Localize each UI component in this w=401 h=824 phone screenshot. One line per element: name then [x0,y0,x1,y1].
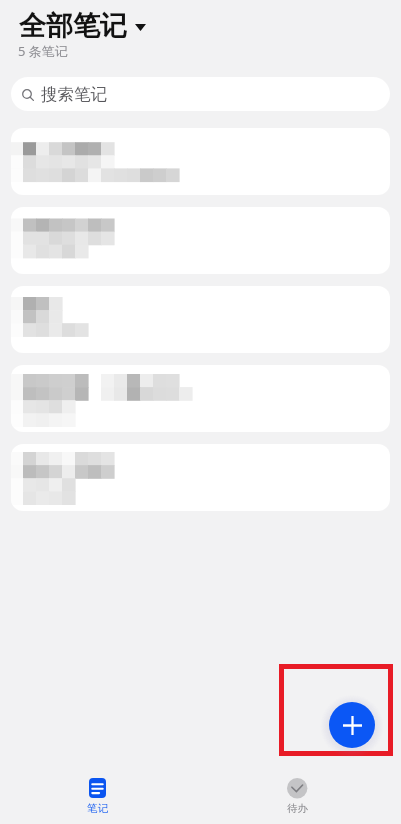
staticText: 全部笔记 [19,9,127,43]
button[interactable] [11,365,390,432]
button[interactable] [11,128,390,195]
button[interactable] [11,286,390,353]
button[interactable]: 笔记 [57,774,137,824]
button[interactable] [11,444,390,511]
staticText: 待办 [287,802,308,815]
staticText: 搜索笔记 [41,84,107,105]
staticText: 5 条笔记 [18,42,68,60]
button[interactable] [11,207,390,274]
button[interactable]: 待办 [257,774,337,824]
button[interactable]: 搜索笔记 [11,77,390,111]
button[interactable]: New note [329,702,375,748]
staticText: 笔记 [87,802,108,815]
